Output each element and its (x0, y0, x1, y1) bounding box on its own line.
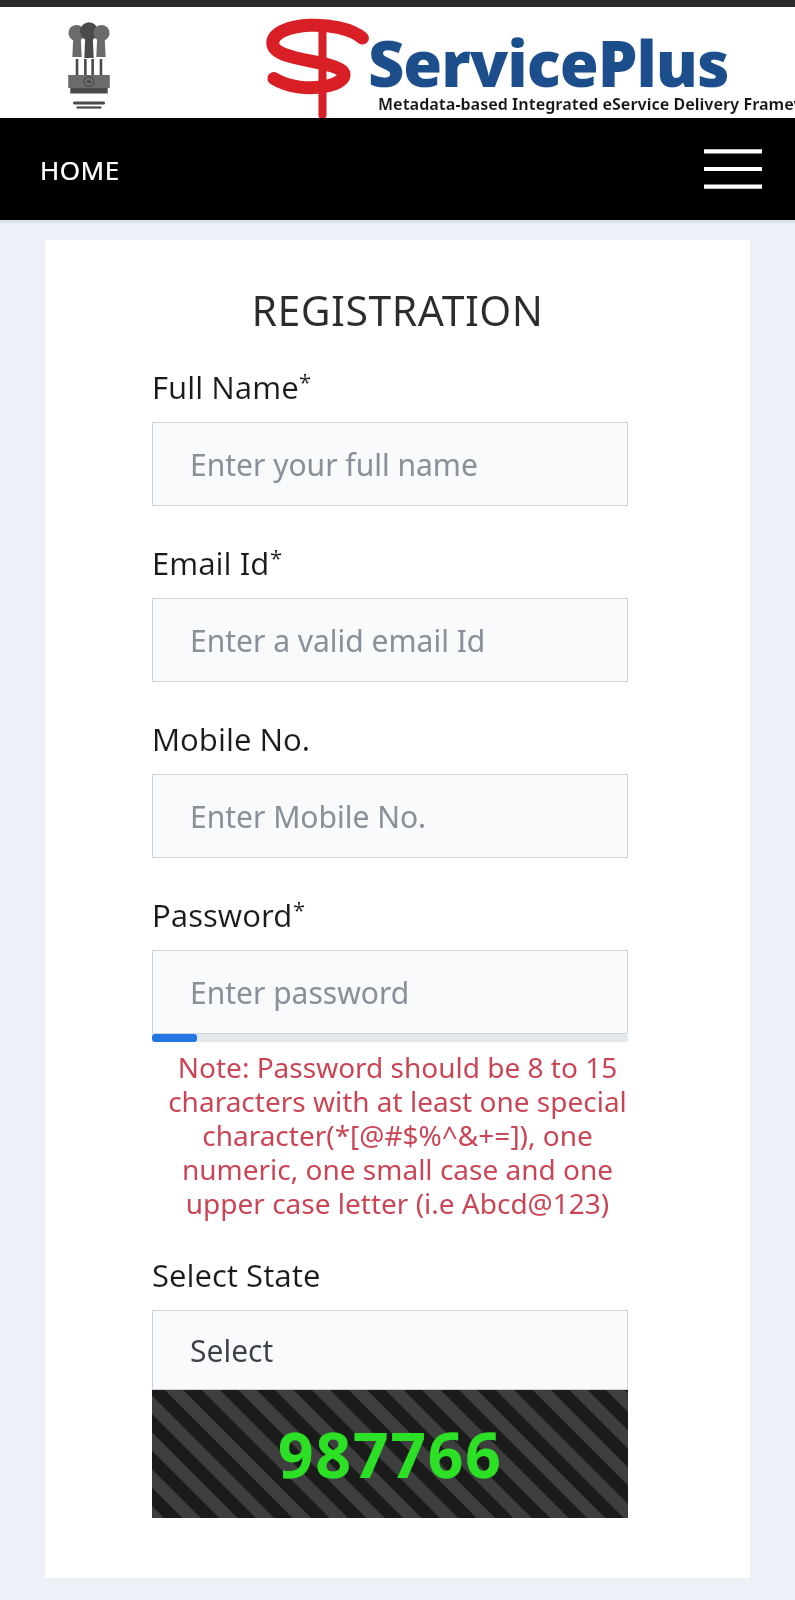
button[interactable]: Enter password (152, 950, 628, 1034)
button[interactable]: Select (152, 1310, 628, 1390)
button[interactable]: Enter Mobile No. (152, 774, 628, 858)
staticText: Email Id (152, 542, 270, 584)
staticText: Mobile No. (152, 718, 311, 760)
staticText: * (293, 894, 306, 924)
staticText: Full Name (152, 366, 299, 408)
staticText: Metadata-based Integrated eService Deliv… (378, 93, 795, 115)
button[interactable]: HOME (26, 142, 134, 197)
staticText: Enter Mobile No. (190, 796, 427, 837)
staticText: Password (152, 894, 293, 936)
staticText: Enter a valid email Id (190, 620, 486, 661)
staticText: REGISTRATION (45, 282, 750, 338)
staticText: * (270, 542, 283, 572)
staticText: ServicePlus (368, 20, 729, 106)
button[interactable]: Enter a valid email Id (152, 598, 628, 682)
staticText: HOME (40, 152, 120, 187)
button[interactable]: Enter your full name (152, 422, 628, 506)
button[interactable]: Open navigation menu (697, 138, 769, 200)
staticText: Select (190, 1330, 274, 1371)
staticText: 987766 (278, 1412, 503, 1496)
staticText: Note: Password should be 8 to 15 charact… (149, 1048, 646, 1222)
staticText: Select State (152, 1254, 321, 1296)
staticText: * (299, 366, 312, 396)
staticText: Enter password (190, 972, 410, 1013)
staticText: Enter your full name (190, 444, 478, 485)
